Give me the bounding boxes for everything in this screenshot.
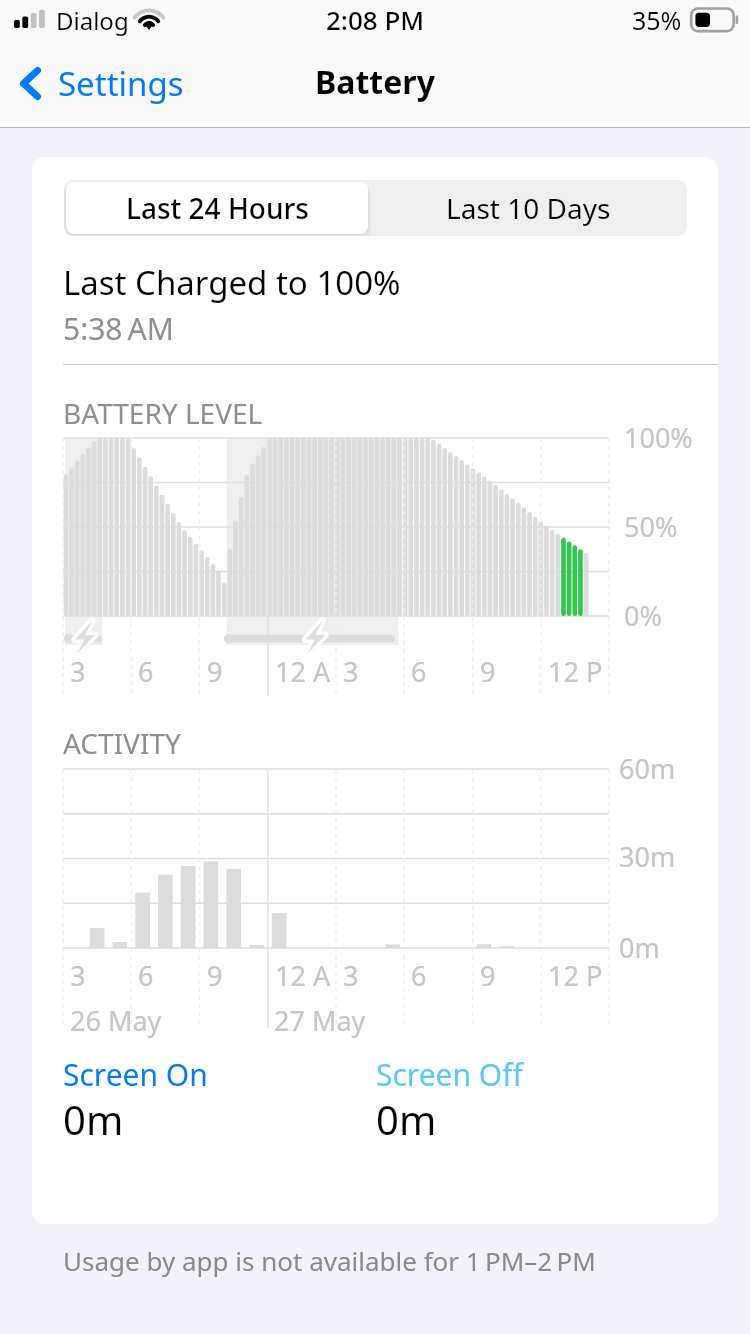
staticText: 6 — [411, 653, 427, 690]
staticText: Dialog — [56, 4, 129, 37]
staticText: 9 — [207, 957, 223, 994]
staticText: 3 — [70, 957, 86, 994]
button[interactable]: Last 24 Hours — [66, 182, 368, 234]
staticText: Settings — [58, 61, 184, 106]
staticText: Screen On — [63, 1054, 208, 1095]
staticText: 0m — [619, 929, 660, 966]
staticText: 12 P — [548, 957, 603, 994]
staticText: 12 A — [275, 957, 331, 994]
button[interactable]: Screen Off — [369, 1047, 530, 1102]
staticText: 0m — [63, 1092, 124, 1146]
staticText: 5:38 AM — [63, 308, 174, 349]
staticText: 35% — [632, 3, 682, 37]
staticText: 0m — [376, 1092, 437, 1146]
staticText: 3 — [343, 957, 359, 994]
staticText: 12 A — [275, 653, 331, 690]
staticText: 9 — [480, 653, 496, 690]
staticText: Usage by app is not available for 1 PM–2… — [63, 1243, 596, 1278]
staticText: Last Charged to 100% — [63, 260, 401, 305]
button[interactable]: Back to Settings — [0, 53, 196, 114]
staticText: 3 — [343, 653, 359, 690]
staticText: 12 P — [548, 653, 603, 690]
staticText: 2:08 PM — [326, 2, 425, 37]
staticText: 100% — [624, 419, 693, 456]
staticText: 26 May — [70, 1002, 162, 1039]
staticText: Last 10 Days — [446, 189, 611, 227]
staticText: 6 — [138, 957, 154, 994]
staticText: 30m — [619, 838, 676, 875]
staticText: 0% — [624, 597, 662, 634]
button[interactable]: Last 10 Days — [370, 180, 687, 236]
button[interactable]: Screen On — [56, 1047, 215, 1102]
staticText: 3 — [70, 653, 86, 690]
staticText: Last 24 Hours — [126, 189, 309, 227]
staticText: 60m — [619, 750, 676, 787]
staticText: 50% — [624, 508, 678, 545]
staticText: 9 — [207, 653, 223, 690]
staticText: 6 — [411, 957, 427, 994]
staticText: Battery — [315, 60, 435, 104]
staticText: BATTERY LEVEL — [63, 394, 263, 432]
staticText: Screen Off — [376, 1054, 523, 1095]
staticText: ACTIVITY — [63, 724, 181, 762]
staticText: 6 — [138, 653, 154, 690]
staticText: 27 May — [274, 1002, 366, 1039]
staticText: 9 — [480, 957, 496, 994]
